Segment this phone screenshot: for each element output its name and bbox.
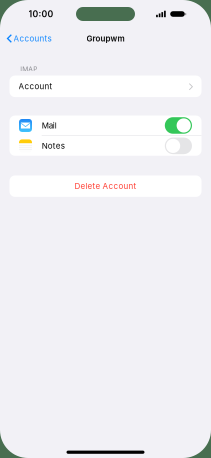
staticText: Delete Account: [74, 181, 136, 191]
button[interactable]: Accounts: [0, 31, 52, 50]
button[interactable]: Notes: [9, 136, 201, 156]
staticText: 10:00: [29, 9, 54, 19]
button[interactable]: Mail: [9, 116, 201, 135]
staticText: Groupwm: [86, 34, 124, 43]
button[interactable]: Delete Account: [9, 175, 201, 197]
button[interactable]: Account: [9, 76, 201, 97]
staticText: Accounts: [14, 34, 52, 43]
staticText: Account: [19, 81, 53, 91]
staticText: Mail: [42, 121, 57, 130]
staticText: IMAP: [20, 65, 37, 73]
staticText: Notes: [42, 141, 65, 151]
